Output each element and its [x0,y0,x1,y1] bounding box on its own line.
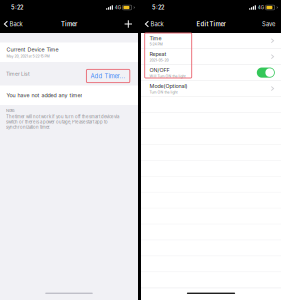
staticText: You have not added any timer [6,92,82,98]
button[interactable]: Back [141,15,167,33]
button[interactable]: Mode(Optional) [141,81,281,97]
staticText: Edit Timer [196,20,225,28]
staticText: Turn ON the light [149,90,177,94]
staticText: Back [9,20,22,28]
staticText: Add Timer... [91,72,126,80]
staticText: 4G [258,5,264,10]
staticText: Timer [61,20,77,28]
button[interactable]: Add Timer... [86,69,130,83]
staticText: The timer will not work if you turn off … [6,114,119,130]
staticText: Back [150,20,163,28]
staticText: 5:22 [11,4,23,11]
button[interactable]: Time [141,33,281,49]
staticText: 5:22 [152,4,164,11]
staticText: Mode(Optional) [149,83,187,89]
button[interactable]: ON/OFF [141,65,281,81]
staticText: Time [149,35,161,41]
staticText: 5:24 PM [149,42,162,46]
staticText: Current Device Time [6,46,58,53]
staticText: Note: [6,108,15,113]
staticText: Save [262,20,275,28]
staticText: 4G [115,5,121,10]
staticText: Timer List [6,71,30,77]
button[interactable]: Add timer [119,15,138,33]
staticText: ON/OFF [149,67,169,73]
button[interactable]: Repeat [141,49,281,65]
staticText: Repeat [149,51,166,57]
staticText: Will Turn ON the light [149,74,185,78]
staticText: 2021-05-20 [149,58,168,62]
button[interactable]: Save [256,15,281,33]
staticText: May 20, 2021 at 5:22:15 PM [6,54,49,58]
button[interactable]: Back [0,15,26,33]
